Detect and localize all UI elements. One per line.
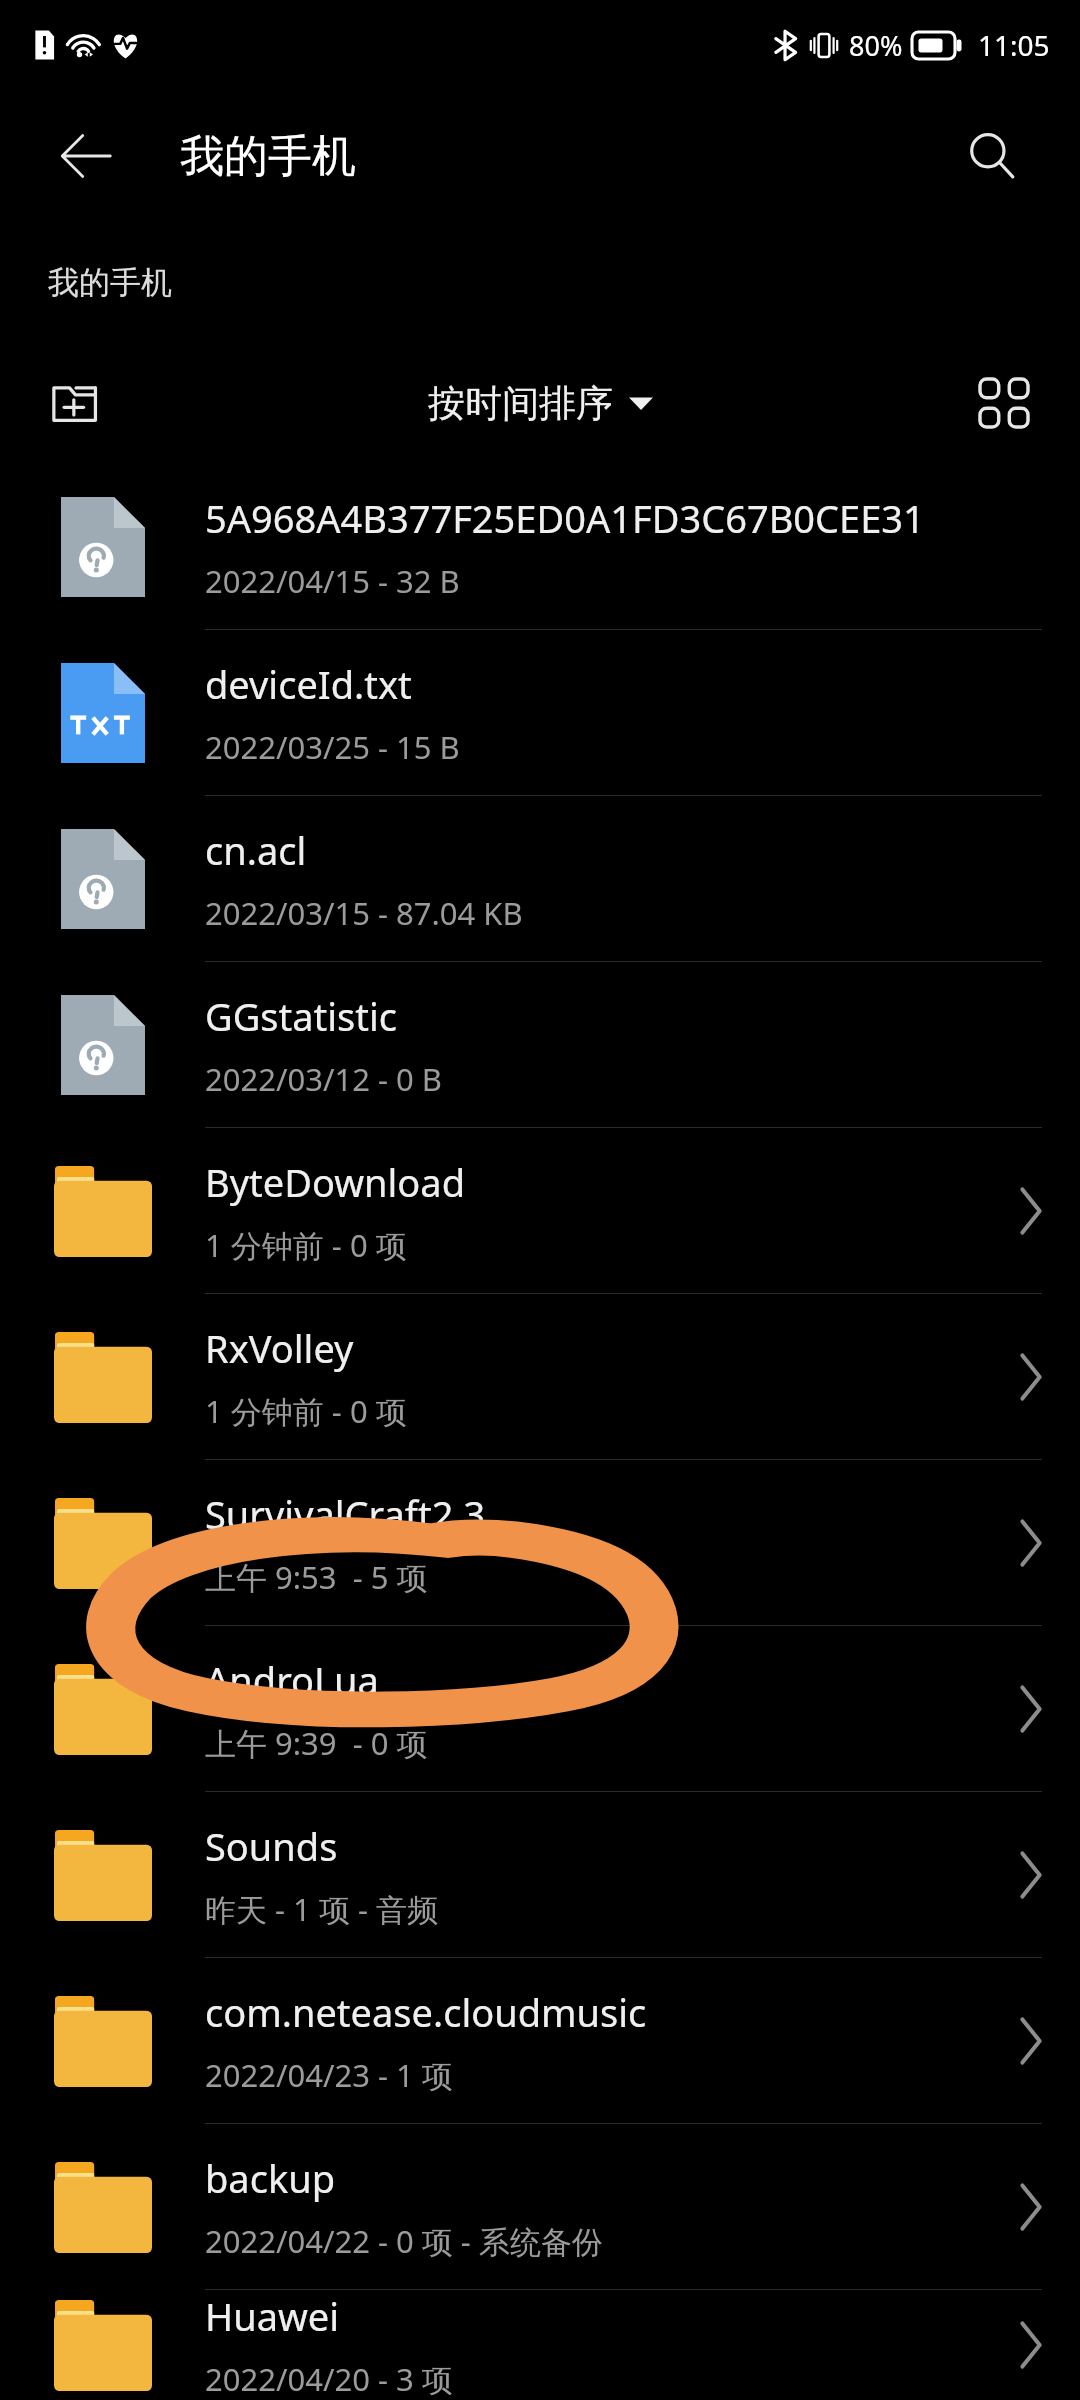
staticText: GGstatistic	[205, 990, 398, 1042]
staticText: Huawei	[205, 2290, 340, 2342]
button[interactable]: com.netease.cloudmusic	[0, 1958, 1080, 2123]
staticText: 1 分钟前 - 0 项	[205, 1390, 407, 1432]
button[interactable]: New folder	[36, 363, 116, 443]
staticText: cn.acl	[205, 824, 307, 876]
staticText: backup	[205, 2152, 336, 2204]
button[interactable]: SurvivalCraft2.3	[0, 1460, 1080, 1625]
staticText: 80%	[849, 27, 903, 64]
button[interactable]: cn.acl	[0, 796, 1080, 961]
staticText: com.netease.cloudmusic	[205, 1986, 647, 2038]
button[interactable]: deviceId.txt	[0, 630, 1080, 795]
staticText: 按时间排序	[428, 380, 613, 427]
staticText: 上午 9:53 - 5 项	[205, 1556, 428, 1598]
button[interactable]: Sounds	[0, 1792, 1080, 1957]
staticText: 2022/04/23 - 1 项	[205, 2054, 453, 2096]
button[interactable]: ByteDownload	[0, 1128, 1080, 1293]
button[interactable]: Huawei	[0, 2290, 1080, 2400]
button[interactable]: RxVolley	[0, 1294, 1080, 1459]
staticText: 2022/04/20 - 3 项	[205, 2358, 453, 2400]
staticText: RxVolley	[205, 1322, 354, 1374]
button[interactable]: backup	[0, 2124, 1080, 2289]
button[interactable]: 5A968A4B377F25ED0A1FD3C67B0CEE31	[0, 464, 1080, 629]
staticText: 1 分钟前 - 0 项	[205, 1224, 407, 1266]
staticText: 2022/04/22 - 0 项 - 系统备份	[205, 2220, 603, 2262]
staticText: AndroLua	[205, 1654, 379, 1706]
staticText: 5A968A4B377F25ED0A1FD3C67B0CEE31	[205, 492, 925, 544]
button[interactable]: GGstatistic	[0, 962, 1080, 1127]
staticText: 2022/03/25 - 15 B	[205, 726, 460, 768]
button[interactable]: 我的手机	[48, 263, 172, 302]
button[interactable]: Back	[46, 116, 126, 196]
staticText: 2022/04/15 - 32 B	[205, 560, 460, 602]
staticText: 11:05	[978, 26, 1050, 64]
staticText: 2022/03/15 - 87.04 KB	[205, 892, 523, 934]
staticText: SurvivalCraft2.3	[205, 1488, 486, 1540]
button[interactable]: AndroLua	[0, 1626, 1080, 1791]
staticText: 2022/03/12 - 0 B	[205, 1058, 442, 1100]
button[interactable]: Grid view	[964, 363, 1044, 443]
staticText: deviceId.txt	[205, 658, 412, 710]
staticText: ByteDownload	[205, 1156, 466, 1208]
staticText: 我的手机	[180, 129, 356, 184]
button[interactable]: Search	[952, 116, 1032, 196]
staticText: Sounds	[205, 1820, 338, 1872]
staticText: 昨天 - 1 项 - 音频	[205, 1888, 438, 1930]
staticText: 上午 9:39 - 0 项	[205, 1722, 428, 1764]
button[interactable]: 按时间排序	[428, 380, 653, 427]
